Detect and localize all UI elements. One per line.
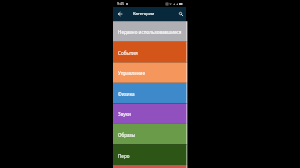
button[interactable]: Звуки — [113, 103, 186, 124]
button[interactable]: Управление — [113, 62, 186, 83]
button[interactable]: Образы — [113, 124, 186, 145]
staticText: 9:45 — [117, 1, 125, 6]
staticText: Перо — [118, 153, 130, 159]
staticText: Недавно использовавшиеся — [118, 29, 182, 35]
staticText: Категории — [133, 11, 155, 17]
staticText: Звуки — [118, 111, 131, 117]
button[interactable]: Физика — [113, 83, 186, 104]
button[interactable]: Back — [116, 10, 124, 18]
staticText: Образы — [118, 132, 136, 138]
button[interactable]: Search — [177, 10, 185, 18]
button[interactable]: Недавно использовавшиеся — [113, 21, 186, 42]
staticText: События — [118, 50, 138, 56]
button[interactable]: События — [113, 42, 186, 63]
staticText: Управление — [118, 70, 145, 76]
button[interactable]: Внешний вид — [113, 165, 186, 168]
staticText: Физика — [118, 91, 135, 97]
button[interactable]: Перо — [113, 145, 186, 166]
